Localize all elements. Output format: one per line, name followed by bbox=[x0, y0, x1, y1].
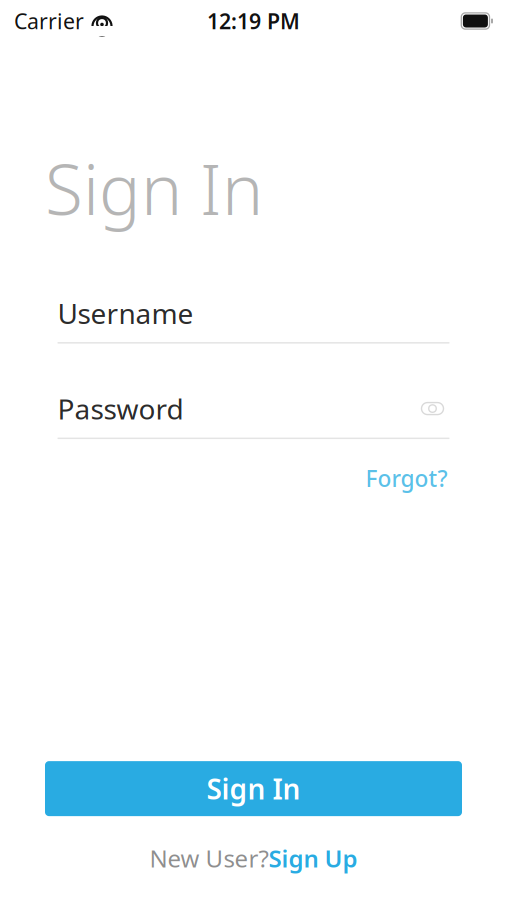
staticText: 12:19 PM bbox=[207, 7, 300, 35]
staticText: Sign Up bbox=[268, 842, 357, 874]
staticText: Forgot? bbox=[365, 463, 447, 493]
button[interactable]: Forgot? bbox=[363, 457, 449, 499]
staticText: Username bbox=[57, 294, 193, 332]
staticText: New User? bbox=[149, 842, 268, 874]
button[interactable]: Sign Up bbox=[268, 842, 357, 874]
button[interactable]: Show password bbox=[415, 396, 449, 422]
staticText: Password bbox=[57, 390, 183, 427]
button[interactable]: Sign In bbox=[45, 761, 462, 816]
staticText: Sign In bbox=[45, 142, 263, 234]
staticText: Sign In bbox=[206, 770, 300, 807]
staticText: Carrier bbox=[14, 7, 84, 35]
